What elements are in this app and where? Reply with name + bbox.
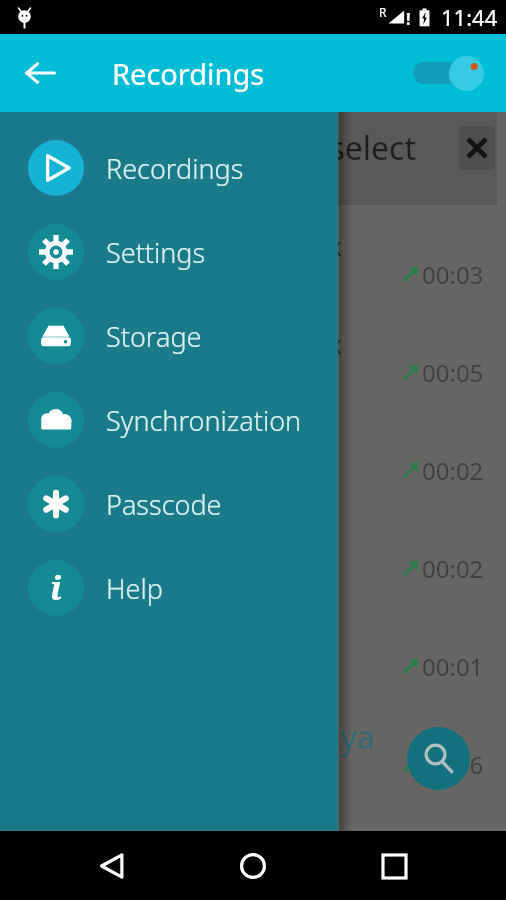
staticText: 00:03 — [422, 258, 484, 291]
staticText: 00:01 — [422, 650, 484, 683]
button[interactable]: Record toggle — [405, 48, 491, 98]
button[interactable]: Synchronization — [0, 378, 338, 462]
button[interactable]: Tap to select — [0, 112, 497, 205]
staticText: Passcode — [106, 486, 222, 523]
staticText: 00:06 — [422, 748, 484, 781]
button[interactable]: X — [0, 323, 506, 421]
button[interactable]: Back — [82, 836, 142, 896]
staticText: Recordings — [106, 150, 244, 187]
staticText: 00:02 — [422, 552, 484, 585]
button[interactable]: Close — [459, 126, 495, 170]
button[interactable]: Back — [14, 47, 66, 99]
staticText: ! — [406, 8, 411, 30]
staticText: Settings — [106, 234, 206, 271]
button[interactable]: Recordings — [0, 126, 338, 210]
button[interactable]: Settings — [0, 210, 338, 294]
staticText: Synchronization — [106, 402, 302, 439]
button[interactable]: Passcode — [0, 462, 338, 546]
staticText: Storage — [106, 318, 202, 355]
staticText: 11:44 — [441, 2, 498, 32]
button[interactable]: Home — [223, 836, 283, 896]
button[interactable]: 00:01 — [0, 617, 506, 715]
button[interactable]: Zapisvaniya — [0, 715, 506, 813]
button[interactable]: 00:02 — [0, 519, 506, 617]
staticText: Zapisvaniya — [199, 715, 376, 759]
button[interactable]: X — [0, 225, 506, 323]
staticText: X — [330, 236, 342, 262]
button[interactable]: Storage — [0, 294, 338, 378]
staticText: Recordings — [112, 54, 265, 93]
staticText: X — [330, 334, 342, 360]
staticText: 00:02 — [422, 454, 484, 487]
button[interactable]: Search — [407, 727, 470, 790]
staticText: 00:05 — [422, 356, 484, 389]
staticText: i — [50, 565, 62, 610]
staticText: Tap to select — [229, 126, 417, 170]
staticText: Help — [106, 570, 163, 607]
button[interactable]: 00:02 — [0, 421, 506, 519]
staticText: R — [379, 4, 387, 20]
button[interactable]: i — [0, 546, 338, 630]
button[interactable]: Recents — [364, 836, 424, 896]
